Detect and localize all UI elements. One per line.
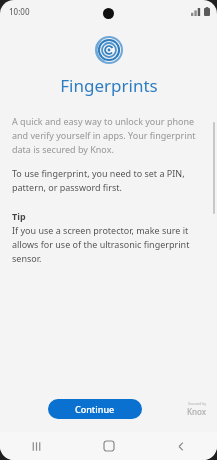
staticText: Fingerprints xyxy=(60,74,158,97)
staticText: A quick and easy way to unlock your phon… xyxy=(12,115,201,156)
staticText: If you use a screen protector, make sure… xyxy=(12,224,201,265)
staticText: Tip xyxy=(12,210,26,222)
staticText: To use fingerprint, you need to set a PI… xyxy=(12,167,201,194)
button[interactable]: Recent apps xyxy=(0,432,73,460)
staticText: Knox xyxy=(187,406,207,417)
staticText: 10:00 xyxy=(9,6,30,17)
button[interactable]: Continue xyxy=(48,399,142,419)
staticText: Secured by xyxy=(188,401,207,406)
button[interactable]: Back xyxy=(145,432,217,460)
button[interactable]: Home xyxy=(73,432,145,460)
staticText: Continue xyxy=(75,403,115,415)
